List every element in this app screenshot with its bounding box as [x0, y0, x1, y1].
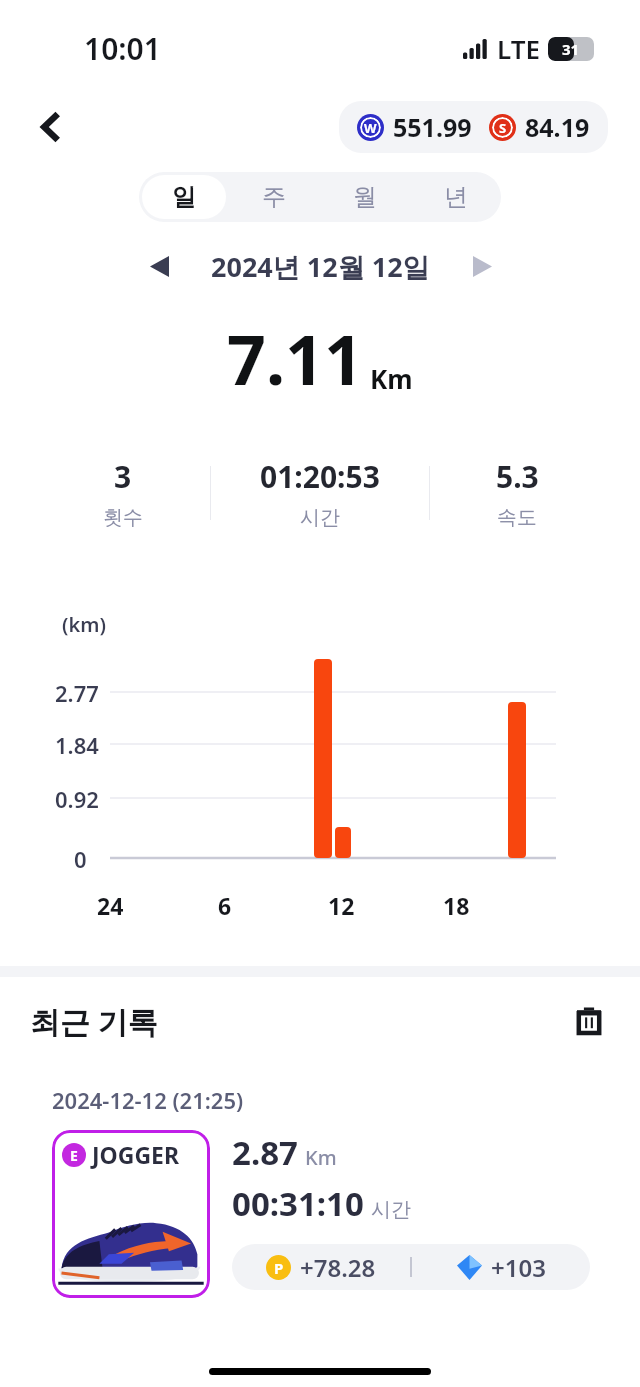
staticText: 년	[444, 182, 468, 212]
button[interactable]: 주	[232, 175, 316, 219]
staticText: 최근 기록	[30, 1001, 158, 1042]
staticText: 2.87	[232, 1130, 298, 1175]
staticText: P	[274, 1258, 284, 1278]
button[interactable]: 일	[142, 175, 226, 219]
staticText: LTE	[497, 31, 540, 66]
staticText: 1.84	[55, 730, 99, 760]
staticText: Km	[305, 1144, 337, 1171]
staticText: 0	[74, 844, 87, 874]
staticText: 시간	[300, 505, 340, 530]
staticText: 10:01	[84, 28, 161, 69]
staticText: +78.28	[300, 1251, 376, 1284]
button[interactable]: Back	[30, 105, 74, 149]
staticText: 01:20:53	[260, 456, 380, 497]
staticText: 2024년 12월 12일	[211, 248, 430, 285]
button[interactable]: 월	[322, 175, 407, 219]
staticText: +103	[491, 1251, 546, 1284]
button[interactable]: 년	[413, 175, 498, 219]
button[interactable]: P	[232, 1244, 590, 1290]
staticText: 2024-12-12 (21:25)	[52, 1085, 244, 1115]
button[interactable]: W	[339, 101, 608, 153]
staticText: 24	[97, 890, 124, 920]
button[interactable]: Next day	[462, 246, 502, 286]
staticText: 551.99	[393, 110, 472, 144]
staticText: 18	[443, 890, 470, 920]
staticText: (km)	[62, 611, 106, 638]
staticText: 일	[172, 182, 196, 212]
staticText: JOGGER	[92, 1139, 180, 1170]
staticText: 31	[562, 39, 580, 59]
staticText: 시간	[371, 1197, 411, 1222]
staticText: 속도	[497, 505, 537, 530]
staticText: 횟수	[103, 505, 143, 530]
button[interactable]: 2024-12-12 (21:25)	[32, 1065, 608, 1312]
staticText: 12	[328, 890, 355, 920]
staticText: 00:31:10	[232, 1181, 364, 1226]
staticText: 6	[218, 890, 232, 920]
staticText: 월	[353, 182, 377, 212]
staticText: 7.11	[227, 312, 363, 405]
button[interactable]: 3	[36, 435, 604, 551]
staticText: 5.3	[496, 456, 539, 497]
staticText: 3	[114, 456, 132, 497]
staticText: S	[499, 119, 507, 137]
staticText: 2.77	[55, 678, 99, 708]
staticText: 0.92	[55, 784, 99, 814]
staticText: Km	[370, 361, 413, 396]
staticText: W	[364, 119, 377, 137]
staticText: 84.19	[525, 110, 590, 144]
button[interactable]: Previous day	[139, 246, 179, 286]
staticText: 주	[262, 182, 286, 212]
button[interactable]: Delete records	[566, 998, 612, 1044]
staticText: E	[70, 1146, 78, 1165]
